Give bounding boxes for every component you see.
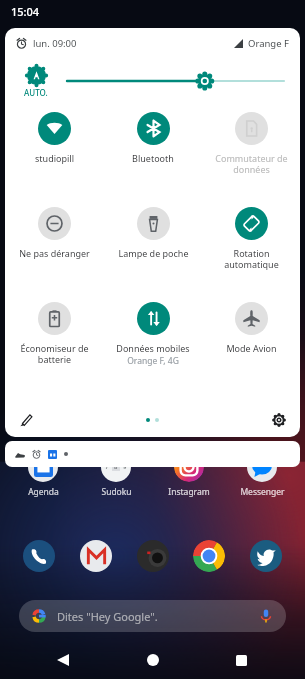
button[interactable]: Bluetooth: [104, 104, 202, 199]
staticText: Données mobiles: [116, 342, 190, 354]
staticText: Agenda: [28, 486, 59, 498]
button[interactable]: Données mobiles: [104, 294, 202, 389]
other: Voice search: [258, 608, 274, 624]
staticText: Ne pas déranger: [19, 247, 90, 259]
staticText: 7: [105, 463, 109, 471]
button[interactable]: Économiseur de batterie: [5, 294, 104, 389]
staticText: Sudoku: [101, 486, 132, 498]
button[interactable]: Phone: [21, 538, 57, 574]
button[interactable]: Lampe de poche: [104, 199, 202, 294]
staticText: Dites "Hey Google".: [57, 609, 258, 624]
button[interactable]: Dites "Hey Google".: [19, 600, 286, 632]
button[interactable]: Back: [45, 642, 81, 678]
staticText: Rotation automatique: [224, 247, 279, 270]
staticText: 8: [114, 463, 118, 471]
staticText: Orange F, 4G: [127, 355, 179, 367]
staticText: Instagram: [168, 486, 210, 498]
button[interactable]: Ne pas déranger: [5, 199, 104, 294]
button[interactable]: 7: [86, 452, 146, 498]
staticText: lun. 09:00: [33, 37, 77, 50]
button[interactable]: Commutateur de données: [202, 104, 300, 199]
button[interactable]: Brightness: [67, 69, 284, 93]
staticText: Lampe de poche: [118, 247, 189, 259]
button[interactable]: Rotation automatique: [202, 199, 300, 294]
staticText: AUTO.: [24, 87, 48, 98]
staticText: Messenger: [240, 486, 285, 498]
staticText: studiopill: [35, 152, 74, 164]
button[interactable]: Camera: [135, 538, 171, 574]
button[interactable]: Auto brightness: [5, 65, 67, 98]
button[interactable]: studiopill: [5, 104, 104, 199]
staticText: Orange F: [248, 37, 289, 50]
button[interactable]: Mode Avion: [202, 294, 300, 389]
button[interactable]: Gmail: [78, 538, 114, 574]
staticText: 9: [123, 463, 127, 471]
staticText: Bluetooth: [132, 152, 174, 164]
staticText: Mode Avion: [226, 342, 277, 354]
button[interactable]: Messenger: [232, 452, 292, 498]
button[interactable]: Instagram: [159, 452, 219, 498]
button[interactable]: Recents: [223, 642, 259, 678]
button[interactable]: Agenda: [13, 452, 73, 498]
button[interactable]: Edit: [13, 407, 39, 433]
button[interactable]: Twitter: [248, 538, 284, 574]
staticText: 15:04: [11, 4, 40, 19]
staticText: Commutateur de données: [215, 152, 288, 175]
button[interactable]: [5, 441, 300, 467]
button[interactable]: Chrome: [191, 538, 227, 574]
button[interactable]: Home: [135, 642, 171, 678]
button[interactable]: Settings: [266, 407, 292, 433]
staticText: Économiseur de batterie: [20, 342, 89, 365]
